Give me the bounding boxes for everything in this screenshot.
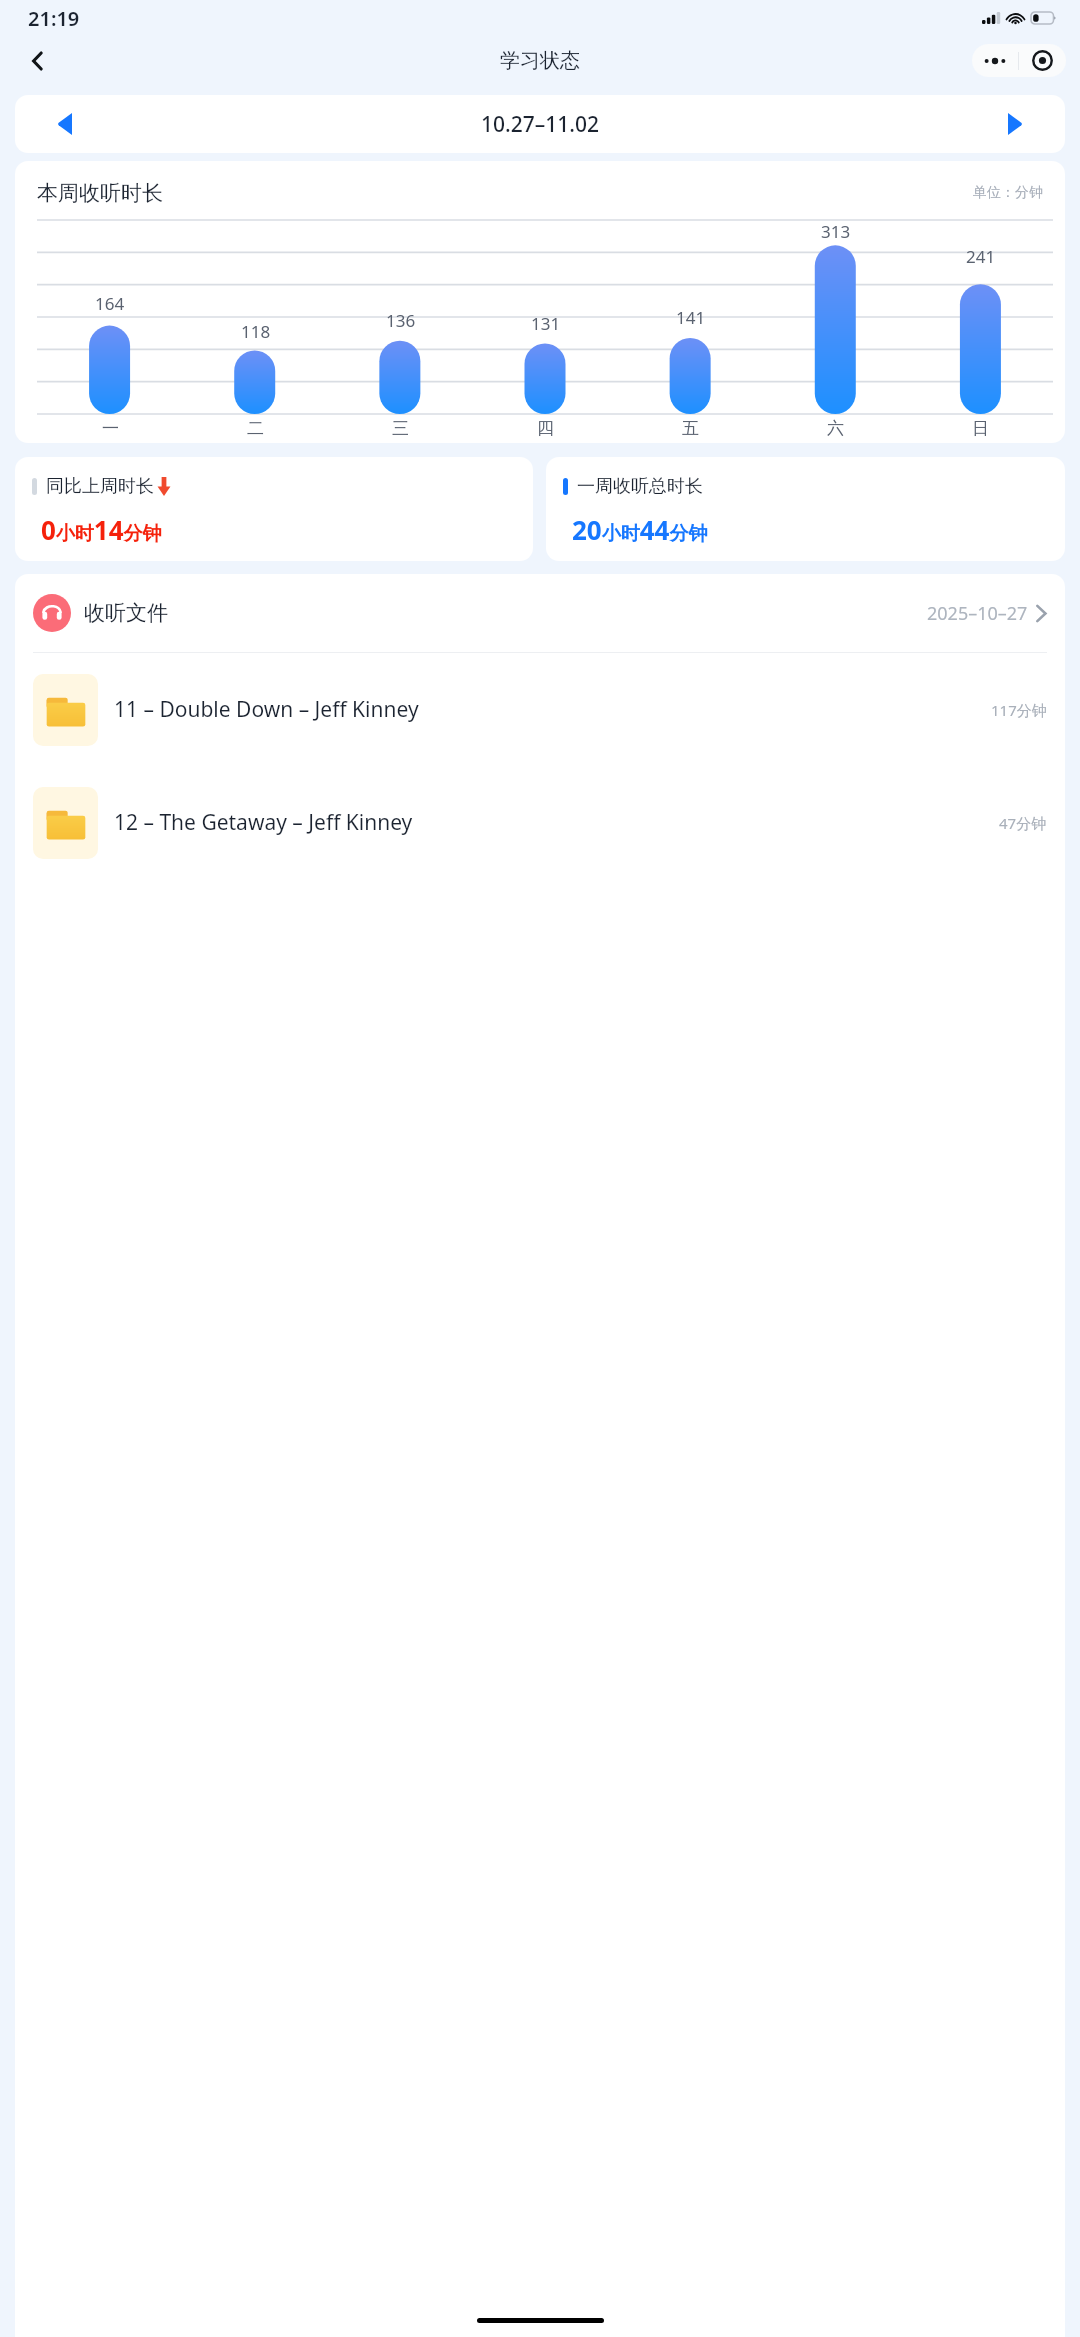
staticText: 同比上周时长 (46, 475, 154, 498)
staticText: 141 (676, 306, 706, 329)
staticText: 131 (531, 312, 561, 335)
staticText: 2025–10–27 (927, 601, 1028, 626)
button[interactable]: 一周收听总时长 (546, 457, 1065, 561)
staticText: 12 – The Getaway – Jeff Kinney (114, 808, 413, 837)
button[interactable]: 11 – Double Down – Jeff Kinney (15, 653, 1065, 766)
staticText: 六 (827, 418, 844, 439)
staticText: 47分钟 (999, 813, 1047, 833)
staticText: 136 (386, 309, 416, 332)
staticText: 单位：分钟 (973, 184, 1043, 202)
staticText: 一周收听总时长 (577, 475, 703, 498)
button[interactable]: Close (1019, 44, 1066, 77)
staticText: 118 (241, 320, 271, 343)
button[interactable]: 收听文件 (15, 574, 1065, 652)
staticText: 164 (95, 292, 125, 315)
staticText: 117分钟 (991, 700, 1047, 720)
staticText: 20小时44分钟 (572, 512, 708, 547)
staticText: 313 (821, 220, 851, 243)
staticText: 收听文件 (84, 600, 168, 626)
button[interactable]: Back (16, 39, 60, 83)
button[interactable]: Previous week (15, 95, 115, 153)
staticText: 一 (102, 418, 119, 439)
staticText: 四 (537, 418, 554, 439)
button[interactable]: 12 – The Getaway – Jeff Kinney (15, 766, 1065, 879)
staticText: 11 – Double Down – Jeff Kinney (114, 695, 419, 724)
button[interactable]: 同比上周时长 (15, 457, 533, 561)
staticText: 241 (966, 245, 996, 268)
staticText: 10.27–11.02 (481, 110, 600, 139)
button[interactable]: Next week (965, 95, 1065, 153)
staticText: 二 (247, 418, 264, 439)
staticText: 0小时14分钟 (41, 512, 162, 547)
staticText: 21:19 (28, 5, 80, 32)
staticText: 本周收听时长 (37, 180, 163, 206)
staticText: 学习状态 (500, 48, 580, 73)
staticText: 三 (392, 418, 409, 439)
staticText: 五 (682, 418, 699, 439)
button[interactable]: More (972, 44, 1018, 77)
staticText: 日 (972, 418, 989, 439)
